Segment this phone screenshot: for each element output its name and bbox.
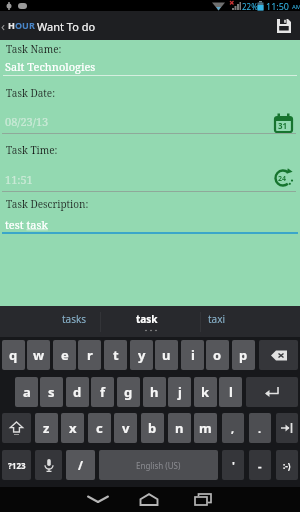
button[interactable]: g [117,377,140,407]
staticText: Task Time: [6,143,58,157]
button[interactable]: , [222,413,244,443]
staticText: Salt Technologies [5,59,96,74]
staticText: tasks [62,312,87,326]
staticText: v [122,419,130,437]
staticText: :-) [283,460,291,471]
staticText: 22% [242,1,258,12]
staticText: . [258,421,262,436]
staticText: 24 [278,174,287,184]
staticText: e [61,346,69,364]
staticText: ‹ [1,17,6,35]
staticText: 11:51 [5,172,33,187]
button[interactable]: i [181,340,204,370]
staticText: a [23,383,31,401]
button[interactable]: 24 [274,168,293,188]
staticText: Task Name: [6,42,62,56]
staticText: , [231,421,235,436]
staticText: l [229,383,233,401]
button[interactable]: d [66,377,89,407]
button[interactable]: f [91,377,114,407]
staticText: 08/23/13 [5,114,49,129]
button[interactable]: 31 [274,113,293,133]
staticText: Task Date: [6,86,56,100]
button[interactable]: m [194,413,217,443]
staticText: ' [232,458,235,473]
button[interactable]: w [27,340,50,370]
button[interactable]: e [53,340,76,370]
button[interactable]: English (US) [99,450,218,480]
button[interactable]: s [40,377,63,407]
button[interactable] [187,487,219,512]
staticText: f [100,383,106,401]
staticText: test task [5,217,48,232]
button[interactable]: p [232,340,255,370]
button[interactable]: j [168,377,191,407]
staticText: AM [292,3,300,11]
staticText: j [178,383,182,401]
staticText: b [148,419,157,437]
button[interactable]: a [15,377,38,407]
button[interactable]: v [114,413,137,443]
button[interactable]: k [194,377,217,407]
staticText: 31 [278,120,288,131]
button[interactable]: ?123 [2,450,31,480]
staticText: h [150,383,159,401]
staticText: s [48,383,55,401]
button[interactable] [35,450,62,480]
button[interactable]: y [130,340,153,370]
staticText: r [87,346,93,364]
staticText: n [175,419,184,437]
button[interactable]: l [219,377,242,407]
staticText: taxi [208,312,226,326]
staticText: d [73,383,82,401]
button[interactable]: r [78,340,101,370]
staticText: - [258,458,262,473]
staticText: m [199,419,212,437]
staticText: Task Description: [6,197,89,211]
button[interactable]: c [88,413,111,443]
button[interactable]: o [206,340,229,370]
staticText: k [201,383,210,401]
staticText: task [136,312,158,326]
staticText: English (US) [136,460,181,471]
staticText: OUR [15,19,35,31]
staticText: x [69,419,77,437]
button[interactable]: . [249,413,271,443]
button[interactable]: n [168,413,191,443]
staticText: o [213,346,222,364]
button[interactable]: u [155,340,178,370]
button[interactable]: z [35,413,58,443]
staticText: / [78,457,83,473]
button[interactable]: b [141,413,164,443]
button[interactable] [133,487,165,512]
button[interactable]: h [143,377,166,407]
staticText: u [162,346,171,364]
staticText: i [191,346,195,364]
staticText: g [124,383,133,401]
staticText: y [138,346,146,364]
button[interactable] [272,16,296,36]
button[interactable]: :-) [276,450,298,480]
staticText: Want To do [37,19,96,34]
staticText: w [33,346,45,364]
button[interactable] [55,308,145,335]
button[interactable]: x [61,413,84,443]
button[interactable] [276,413,298,443]
staticText: t [113,346,119,364]
staticText: H [8,19,15,31]
button[interactable]: - [249,450,271,480]
staticText: z [43,419,50,437]
button[interactable] [246,377,298,407]
staticText: q [9,346,18,364]
button[interactable] [259,340,298,370]
button[interactable]: ' [222,450,244,480]
button[interactable]: t [104,340,127,370]
button[interactable]: / [66,450,95,480]
button[interactable] [82,487,114,512]
staticText: 11:50 [266,0,290,12]
button[interactable] [2,413,31,443]
button[interactable]: q [2,340,25,370]
staticText: c [96,419,103,437]
staticText: ?123 [8,460,26,471]
staticText: p [239,346,248,364]
